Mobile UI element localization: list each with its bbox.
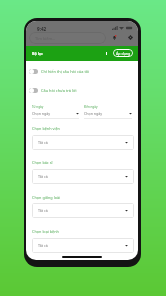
staticText: Từ ngày bbox=[32, 105, 44, 109]
button[interactable]: Settings bbox=[125, 32, 136, 43]
staticText: Tất cả bbox=[38, 140, 48, 145]
staticText: Áp dụng bbox=[116, 51, 131, 56]
staticText: Câu hỏi chưa trả lời bbox=[41, 88, 77, 93]
staticText: Chỉ hiển thị câu hỏi của tôi bbox=[41, 69, 90, 74]
button[interactable]: Chỉ hiển thị câu hỏi của tôi bbox=[29, 67, 138, 76]
button[interactable]: Notifications bbox=[109, 32, 120, 43]
button[interactable]: Tất cả bbox=[38, 135, 128, 150]
button[interactable]: Tất cả bbox=[38, 203, 128, 218]
staticText: Chọn ngày bbox=[84, 111, 103, 116]
button[interactable]: Tìm kiếm... bbox=[29, 32, 106, 44]
button[interactable]: Tất cả bbox=[38, 169, 128, 184]
staticText: 9:42 bbox=[37, 26, 47, 32]
button[interactable]: Từ ngày bbox=[32, 105, 79, 119]
staticText: Tất cả bbox=[38, 208, 48, 213]
button[interactable]: Câu hỏi chưa trả lời bbox=[29, 86, 138, 95]
button[interactable]: Tất cả bbox=[38, 238, 128, 253]
button[interactable]: Đến ngày bbox=[84, 105, 132, 119]
staticText: Chọn giống loài bbox=[32, 195, 61, 200]
staticText: Tất cả bbox=[38, 243, 48, 248]
staticText: Tất cả bbox=[38, 174, 48, 179]
staticText: Chọn loại bệnh bbox=[32, 229, 59, 234]
staticText: Chọn ngày bbox=[32, 111, 51, 116]
button[interactable]: Áp dụng bbox=[113, 49, 133, 57]
staticText: Chọn bệnh viện bbox=[32, 126, 60, 131]
staticText: Đến ngày bbox=[84, 105, 98, 109]
staticText: Tìm kiếm... bbox=[35, 36, 56, 41]
staticText: Bộ lọc bbox=[32, 51, 44, 56]
staticText: Chọn bác sĩ bbox=[32, 160, 53, 165]
button[interactable]: Reset filters bbox=[101, 48, 112, 59]
